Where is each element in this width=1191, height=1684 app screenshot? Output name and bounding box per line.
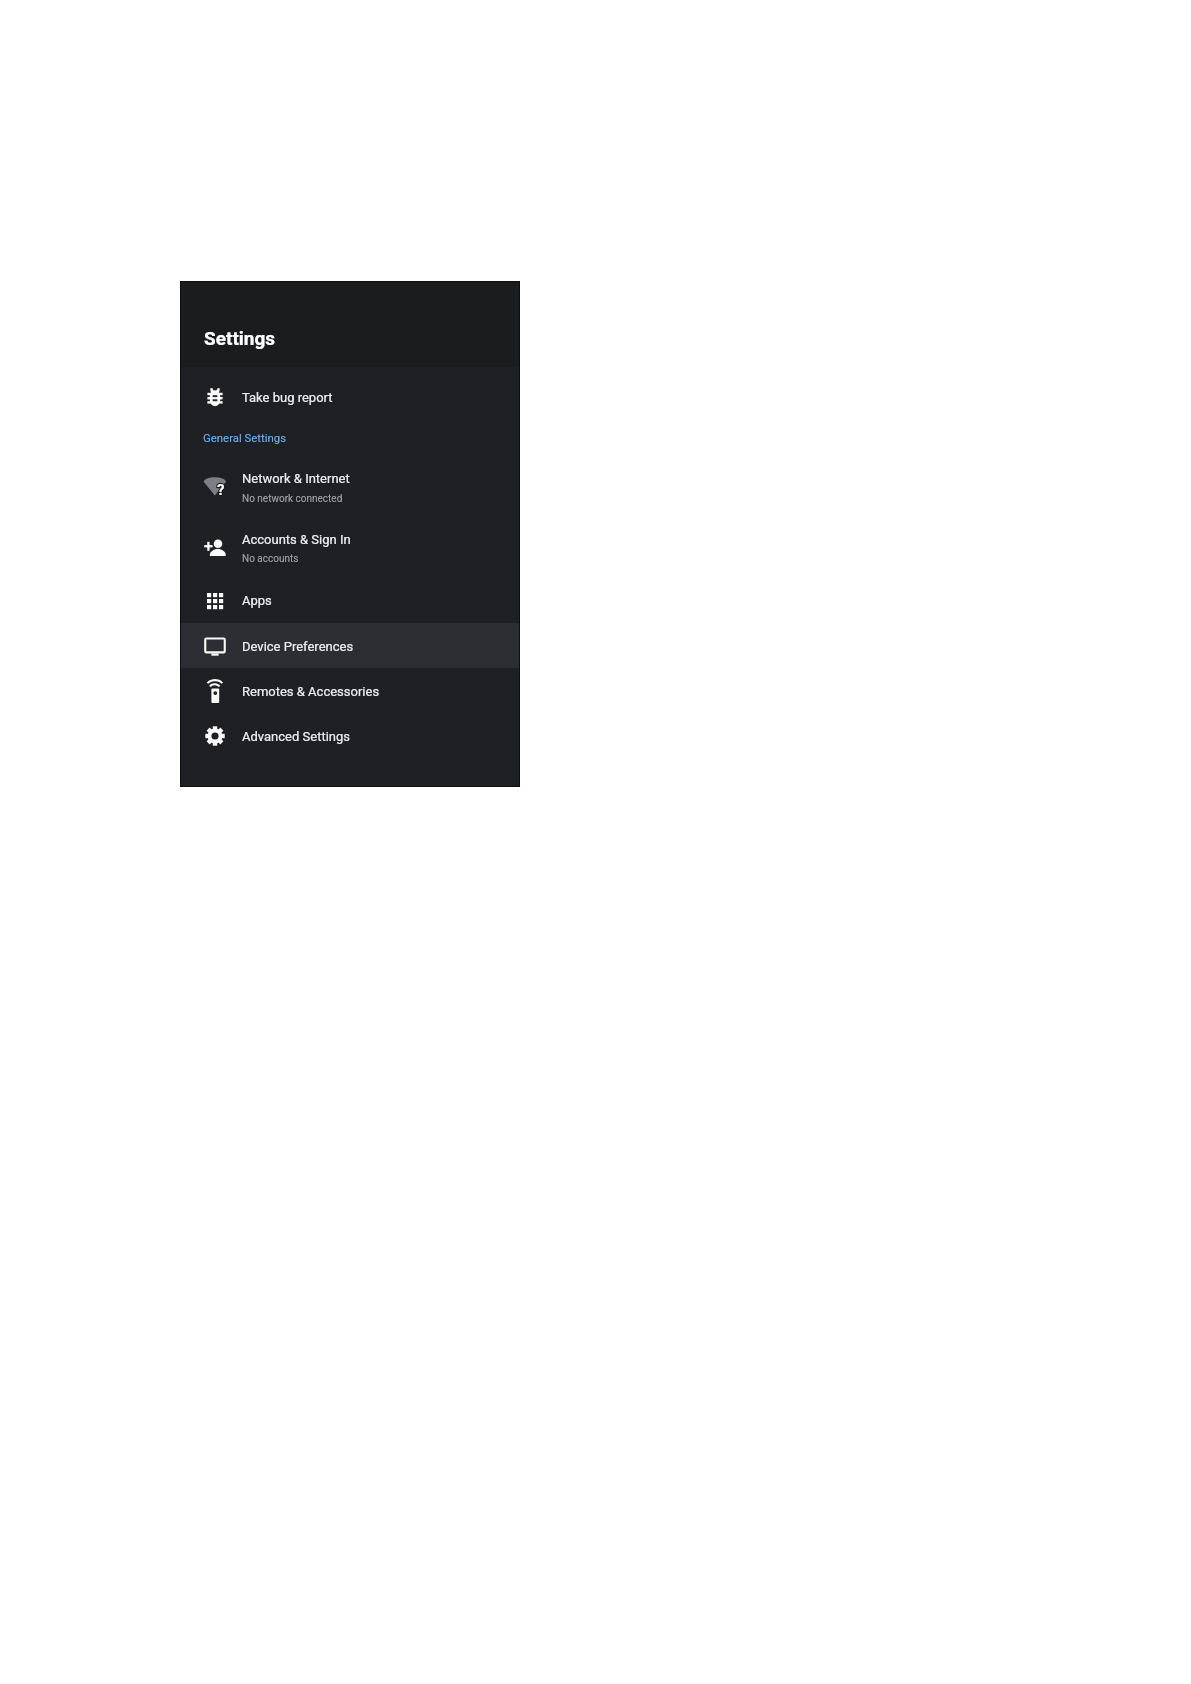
staticText: ?: [217, 481, 225, 499]
staticText: Apps: [242, 593, 272, 608]
button[interactable]: Remote control: [180, 669, 520, 714]
button[interactable]: Add account: [180, 513, 520, 574]
button[interactable]: Apps: [180, 578, 520, 623]
other: Remote control: [203, 680, 227, 704]
other: Settings gear: [203, 724, 227, 748]
staticText: Accounts & Sign In: [242, 532, 351, 547]
staticText: Remotes & Accessories: [242, 684, 380, 699]
staticText: Take bug report: [242, 390, 333, 405]
staticText: Settings: [204, 327, 276, 349]
other: Bug report: [203, 385, 227, 409]
staticText: Advanced Settings: [242, 729, 350, 744]
staticText: No network connected: [242, 493, 343, 505]
other: Television: [203, 634, 227, 658]
staticText: Device Preferences: [242, 639, 354, 654]
staticText: General Settings: [203, 431, 287, 444]
button[interactable]: Wi-Fi not connected: [180, 452, 520, 513]
staticText: Network & Internet: [242, 471, 350, 486]
staticText: No accounts: [242, 553, 299, 565]
staticText: ?: [217, 481, 225, 499]
button[interactable]: Settings gear: [180, 714, 520, 759]
other: Apps: [203, 589, 227, 613]
other: Wi-Fi not connected: [203, 474, 227, 498]
button[interactable]: Bug report: [180, 375, 520, 420]
button[interactable]: Television: [180, 623, 520, 668]
other: Add account: [203, 536, 227, 560]
